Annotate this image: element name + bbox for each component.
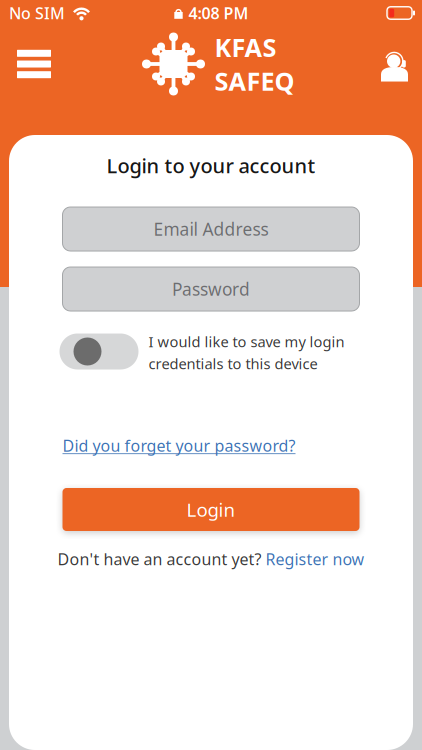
staticText: Register now <box>265 548 364 570</box>
button[interactable]: Support <box>373 45 416 82</box>
staticText: SAFEQ <box>214 64 294 98</box>
staticText: Don't have an account yet? <box>57 548 261 570</box>
staticText: No SIM <box>9 2 65 24</box>
button[interactable]: Did you forget your password? <box>62 436 295 455</box>
button[interactable]: Menu <box>6 38 62 90</box>
staticText: credentials to this device <box>148 354 317 373</box>
button[interactable]: Login <box>62 488 359 531</box>
staticText: Password <box>172 277 250 300</box>
staticText: Email Address <box>153 217 268 240</box>
staticText: Login to your account <box>106 152 315 179</box>
staticText: I would like to save my login <box>148 332 344 351</box>
button[interactable]: Save my login credentials to this device <box>59 333 138 369</box>
staticText: KFAS <box>214 30 276 64</box>
staticText: Did you forget your password? <box>62 435 295 456</box>
button[interactable]: Register now <box>265 548 364 570</box>
staticText: 4:08 PM <box>188 2 248 24</box>
staticText: Login <box>186 497 235 522</box>
